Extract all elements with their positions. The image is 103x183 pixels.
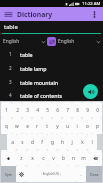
button[interactable]: 2 [12, 102, 22, 118]
button[interactable]: Search word [4, 21, 103, 33]
staticText: table [4, 23, 18, 31]
button[interactable]: d [27, 134, 37, 150]
staticText: j [71, 139, 73, 146]
staticText: 4 [9, 92, 12, 98]
staticText: 0 [96, 107, 99, 114]
staticText: table of contents [20, 92, 62, 99]
button[interactable]: g [47, 134, 57, 150]
staticText: v [52, 155, 55, 162]
staticText: l [91, 139, 93, 146]
button[interactable]: 2 [0, 61, 103, 75]
button[interactable]: k [77, 134, 87, 150]
button[interactable]: 9 [82, 102, 92, 118]
button[interactable]: w [12, 118, 22, 134]
button[interactable]: Input settings [16, 166, 26, 182]
button[interactable]: 0 [92, 102, 102, 118]
staticText: 2 [9, 65, 12, 71]
button[interactable]: x [27, 150, 38, 166]
button[interactable]: Open navigation drawer [3, 9, 14, 20]
staticText: c [42, 155, 45, 162]
button[interactable]: Sym [1, 166, 16, 182]
staticText: English [3, 38, 20, 45]
button[interactable]: q [1, 118, 12, 134]
button[interactable]: i [72, 118, 82, 134]
staticText: z [20, 155, 23, 162]
button[interactable]: ‹ English(US) › [26, 166, 76, 182]
button[interactable]: b [58, 150, 68, 166]
button[interactable]: z [16, 150, 27, 166]
button[interactable]: 1 [0, 47, 103, 61]
button[interactable]: Backspace [88, 150, 102, 166]
staticText: 5 [46, 107, 49, 114]
staticText: ‹ English(US) › [41, 172, 61, 176]
staticText: 3 [26, 107, 29, 114]
staticText: table mountain [20, 79, 59, 86]
button[interactable]: Swap languages [47, 37, 56, 46]
staticText: 3 [9, 79, 12, 85]
staticText: d [31, 139, 34, 146]
button[interactable]: More options [89, 9, 100, 20]
button[interactable]: , [76, 166, 86, 182]
button[interactable]: Select language English [3, 36, 47, 47]
button[interactable]: 1 [1, 102, 12, 118]
button[interactable]: 4 [0, 89, 103, 101]
staticText: m [81, 155, 86, 162]
staticText: 4 [36, 107, 39, 114]
button[interactable]: y [52, 118, 62, 134]
staticText: t [46, 123, 48, 130]
staticText: , [80, 171, 82, 177]
button[interactable]: 5 [42, 102, 52, 118]
button[interactable]: Pronounce word [83, 84, 98, 99]
staticText: 11:22 AM [82, 1, 101, 7]
button[interactable]: 3 [22, 102, 32, 118]
button[interactable]: c [38, 150, 48, 166]
staticText: 2 [16, 107, 19, 114]
button[interactable]: t [42, 118, 52, 134]
button[interactable]: u [62, 118, 72, 134]
button[interactable]: r [32, 118, 42, 134]
staticText: Dictionary [17, 10, 53, 19]
staticText: 6 [56, 107, 59, 114]
button[interactable]: a [7, 134, 17, 150]
staticText: w [15, 123, 19, 130]
staticText: h [61, 139, 64, 146]
button[interactable]: v [48, 150, 58, 166]
staticText: Sym [5, 172, 12, 177]
staticText: e [26, 123, 29, 130]
button[interactable]: 7 [62, 102, 72, 118]
button[interactable]: m [78, 150, 88, 166]
staticText: r [36, 123, 38, 130]
staticText: table [20, 51, 33, 58]
staticText: 9 [86, 107, 89, 114]
button[interactable]: 4 [32, 102, 42, 118]
button[interactable]: Shift [1, 150, 16, 166]
staticText: o [86, 123, 89, 130]
button[interactable]: 8 [72, 102, 82, 118]
button[interactable]: n [68, 150, 78, 166]
staticText: Done [90, 172, 99, 177]
staticText: q [5, 123, 8, 130]
staticText: 1 [9, 51, 12, 57]
staticText: g [51, 139, 54, 146]
button[interactable]: f [37, 134, 47, 150]
staticText: u [66, 123, 69, 130]
button[interactable]: e [22, 118, 32, 134]
staticText: k [81, 139, 84, 146]
button[interactable]: s [17, 134, 27, 150]
button[interactable]: p [92, 118, 102, 134]
button[interactable]: l [87, 134, 97, 150]
button[interactable]: 3 [0, 75, 103, 89]
button[interactable]: j [67, 134, 77, 150]
staticText: English [58, 38, 75, 45]
staticText: 8 [76, 107, 79, 114]
button[interactable]: Done [86, 166, 102, 182]
staticText: y [56, 123, 59, 130]
button[interactable]: Select language English [56, 36, 100, 47]
staticText: 1 [5, 107, 8, 114]
staticText: 7 [66, 107, 69, 114]
staticText: x [31, 155, 34, 162]
staticText: a [11, 139, 14, 146]
button[interactable]: h [57, 134, 67, 150]
button[interactable]: 6 [52, 102, 62, 118]
button[interactable]: o [82, 118, 92, 134]
